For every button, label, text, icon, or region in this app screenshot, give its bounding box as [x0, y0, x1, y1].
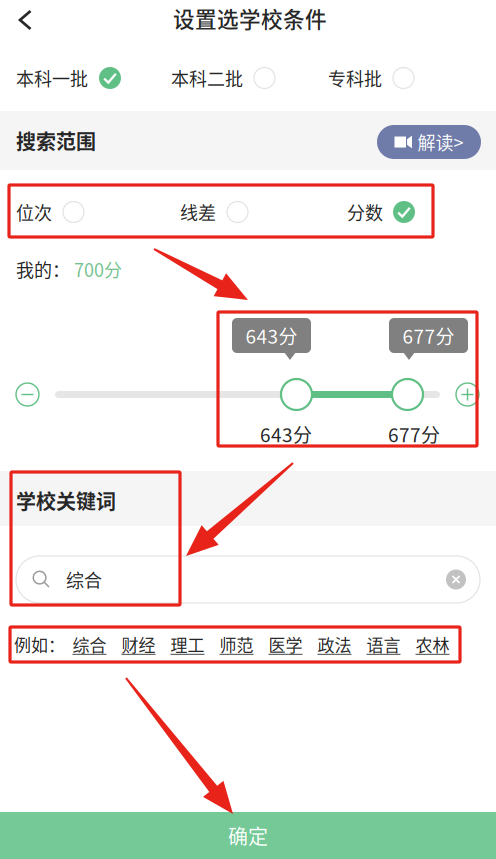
staticText: 我的：: [16, 256, 70, 282]
staticText: 语言: [366, 632, 400, 657]
staticText: 643分: [260, 420, 312, 448]
staticText: 师范: [219, 632, 253, 657]
button[interactable]: 语言: [359, 632, 408, 657]
staticText: 专科批: [328, 65, 382, 91]
staticText: 本科一批: [16, 65, 88, 91]
button[interactable]: 增加: [448, 375, 487, 414]
button[interactable]: 分数: [347, 199, 415, 225]
staticText: 设置选学校条件: [173, 2, 327, 34]
button[interactable]: 位次: [16, 199, 84, 225]
button[interactable]: 专科批: [328, 65, 414, 91]
staticText: 643分: [245, 322, 297, 349]
button[interactable]: 确定: [0, 812, 496, 859]
staticText: 医学: [268, 632, 302, 657]
button[interactable]: 本科二批: [171, 65, 275, 91]
button[interactable]: 线差: [180, 199, 248, 225]
button[interactable]: 农林: [408, 632, 457, 657]
staticText: 线差: [180, 199, 216, 225]
button[interactable]: 理工: [163, 632, 212, 657]
staticText: 分数: [347, 199, 383, 225]
staticText: 700分: [74, 256, 122, 282]
button[interactable]: 清除: [446, 556, 480, 603]
button[interactable]: 返回: [5, 0, 45, 43]
staticText: 农林: [415, 632, 449, 657]
staticText: 677分: [388, 420, 440, 448]
staticText: 学校关键词: [16, 486, 116, 515]
button[interactable]: 师范: [212, 632, 261, 657]
button[interactable]: 财经: [114, 632, 163, 657]
button[interactable]: 本科一批: [16, 65, 121, 91]
staticText: 搜索范围: [16, 126, 96, 155]
staticText: 综合: [66, 566, 102, 593]
staticText: 677分: [402, 322, 454, 349]
button[interactable]: 减少: [8, 375, 47, 414]
staticText: 政法: [317, 632, 351, 657]
button[interactable]: 解读>: [377, 125, 481, 159]
staticText: 解读>: [417, 129, 463, 155]
staticText: 综合: [72, 632, 106, 657]
staticText: 位次: [16, 199, 52, 225]
staticText: 理工: [170, 632, 204, 657]
staticText: 财经: [121, 632, 155, 657]
staticText: 例如：: [14, 632, 65, 657]
staticText: 确定: [228, 821, 268, 850]
button[interactable]: 综合: [65, 632, 114, 657]
staticText: 本科二批: [171, 65, 243, 91]
button[interactable]: 医学: [261, 632, 310, 657]
button[interactable]: 政法: [310, 632, 359, 657]
